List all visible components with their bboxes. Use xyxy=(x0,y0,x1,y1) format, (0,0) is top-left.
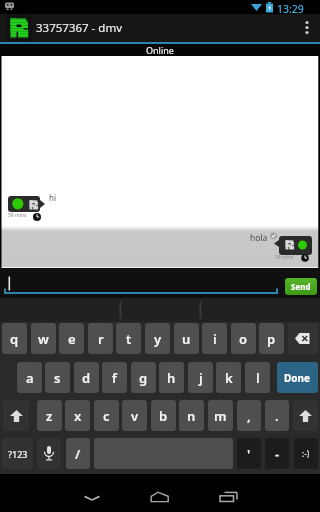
button[interactable]: t xyxy=(116,323,141,354)
staticText: u xyxy=(182,330,191,348)
button[interactable]: ?123 xyxy=(2,438,33,469)
staticText: h xyxy=(167,369,176,387)
button[interactable]: f xyxy=(102,362,127,393)
staticText: x xyxy=(74,407,82,425)
button[interactable]: d xyxy=(74,362,99,393)
button[interactable]: p xyxy=(259,323,284,354)
button[interactable]: ' xyxy=(237,438,261,469)
button[interactable] xyxy=(209,478,251,508)
staticText: z xyxy=(46,407,53,425)
button[interactable]: l xyxy=(245,362,270,393)
button[interactable]: c xyxy=(94,400,119,431)
button[interactable] xyxy=(279,236,312,255)
staticText: Online xyxy=(146,44,174,56)
button[interactable]: q xyxy=(2,323,27,354)
button[interactable]: j xyxy=(188,362,213,393)
staticText: j xyxy=(199,369,203,387)
button[interactable]: b xyxy=(151,400,176,431)
button[interactable]: , xyxy=(237,400,261,431)
staticText: q xyxy=(10,330,19,348)
button[interactable] xyxy=(288,323,318,354)
button[interactable]: a xyxy=(17,362,42,393)
staticText: 59 mins xyxy=(275,254,294,261)
staticText: l xyxy=(256,369,260,387)
button[interactable] xyxy=(139,478,181,508)
button[interactable]: :-) xyxy=(294,438,318,469)
staticText: y xyxy=(154,330,162,348)
staticText: Done xyxy=(284,371,311,385)
staticText: r xyxy=(98,330,104,348)
button[interactable]: o xyxy=(231,323,256,354)
staticText: b xyxy=(159,407,168,425)
button[interactable]: i xyxy=(202,323,227,354)
button[interactable] xyxy=(2,270,282,298)
staticText: g xyxy=(139,369,148,387)
staticText: d xyxy=(82,369,91,387)
button[interactable]: . xyxy=(265,400,289,431)
staticText: hola xyxy=(250,232,268,244)
button[interactable]: h xyxy=(159,362,184,393)
button[interactable]: - xyxy=(265,438,289,469)
staticText: v xyxy=(131,407,139,425)
button[interactable]: k xyxy=(216,362,241,393)
staticText: s xyxy=(54,369,61,387)
button[interactable]: / xyxy=(66,438,90,469)
staticText: 59 mins xyxy=(8,212,27,219)
button[interactable]: w xyxy=(31,323,56,354)
button[interactable]: x xyxy=(65,400,90,431)
staticText: c xyxy=(103,407,110,425)
staticText: o xyxy=(239,330,248,348)
staticText: f xyxy=(112,369,117,387)
button[interactable]: u xyxy=(174,323,199,354)
staticText: n xyxy=(187,407,196,425)
staticText: t xyxy=(126,330,132,348)
button[interactable]: Done xyxy=(277,362,318,393)
button[interactable]: s xyxy=(45,362,70,393)
staticText: . xyxy=(275,407,279,425)
button[interactable] xyxy=(8,196,40,212)
staticText: hi xyxy=(49,192,57,203)
button[interactable]: v xyxy=(122,400,147,431)
staticText: :-) xyxy=(302,448,310,459)
button[interactable]: g xyxy=(131,362,156,393)
button[interactable]: m xyxy=(208,400,233,431)
staticText: ' xyxy=(247,445,251,463)
button[interactable] xyxy=(6,15,32,41)
staticText: a xyxy=(26,369,34,387)
staticText: ?123 xyxy=(8,448,28,460)
staticText: / xyxy=(75,445,81,463)
button[interactable]: y xyxy=(145,323,170,354)
staticText: w xyxy=(38,330,49,348)
staticText: i xyxy=(213,330,217,348)
button[interactable]: z xyxy=(37,400,62,431)
staticText: 33757367 - dmv xyxy=(36,20,122,36)
button[interactable]: Send xyxy=(285,278,317,295)
staticText: , xyxy=(247,407,251,425)
staticText: p xyxy=(267,330,276,348)
button[interactable]: n xyxy=(179,400,204,431)
button[interactable] xyxy=(75,478,117,508)
staticText: k xyxy=(225,369,233,387)
button[interactable] xyxy=(37,438,61,469)
staticText: m xyxy=(214,407,227,425)
staticText: - xyxy=(275,445,280,463)
staticText: 13:29 xyxy=(277,2,304,16)
button[interactable] xyxy=(3,400,29,431)
button[interactable]: r xyxy=(88,323,113,354)
staticText: Send xyxy=(291,281,311,292)
button[interactable]: e xyxy=(59,323,84,354)
staticText: e xyxy=(68,330,76,348)
button[interactable] xyxy=(293,400,318,431)
